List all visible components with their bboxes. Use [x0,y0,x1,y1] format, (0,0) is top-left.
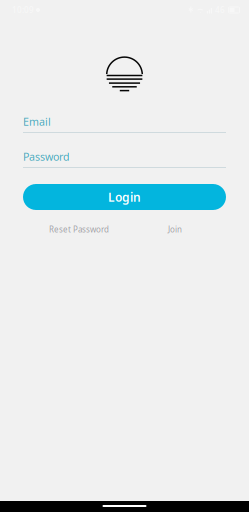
staticText: Password [23,149,70,164]
button[interactable]: Email [23,116,226,133]
staticText: Email [23,114,51,129]
staticText: Join [168,224,182,235]
staticText: Login [108,189,141,205]
button[interactable]: Join [168,224,182,235]
button[interactable]: Password [23,151,226,168]
button[interactable]: Login [23,184,226,210]
button[interactable]: Reset Password [49,224,109,235]
staticText: Reset Password [49,224,109,235]
